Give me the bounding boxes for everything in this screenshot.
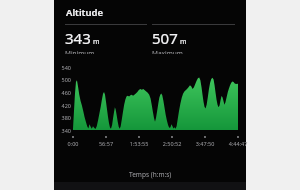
button[interactable]: Altitude [54,0,246,24]
staticText: 3:47:50 [191,140,219,147]
staticText: 540 [54,64,71,71]
staticText: 380 [54,114,71,121]
staticText: 460 [54,89,71,96]
staticText: Temps (h:m:s) [129,170,172,179]
staticText: 420 [54,102,71,109]
staticText: 56:57 [92,140,120,147]
staticText: 4:44:47 [224,140,252,147]
staticText: 1:53:55 [125,140,153,147]
staticText: m [180,37,187,47]
staticText: 500 [54,76,71,83]
staticText: m [93,37,100,47]
staticText: 340 [54,127,71,134]
staticText: Altitude [66,6,104,19]
staticText: 0:00 [59,140,87,147]
staticText: Maximum [152,49,183,54]
staticText: 2:50:52 [158,140,186,147]
staticText: 343 [65,28,91,48]
button[interactable]: 343 [65,28,147,54]
staticText: Minimum [65,49,95,54]
button[interactable]: 507 [152,28,235,54]
staticText: 507 [152,28,178,48]
